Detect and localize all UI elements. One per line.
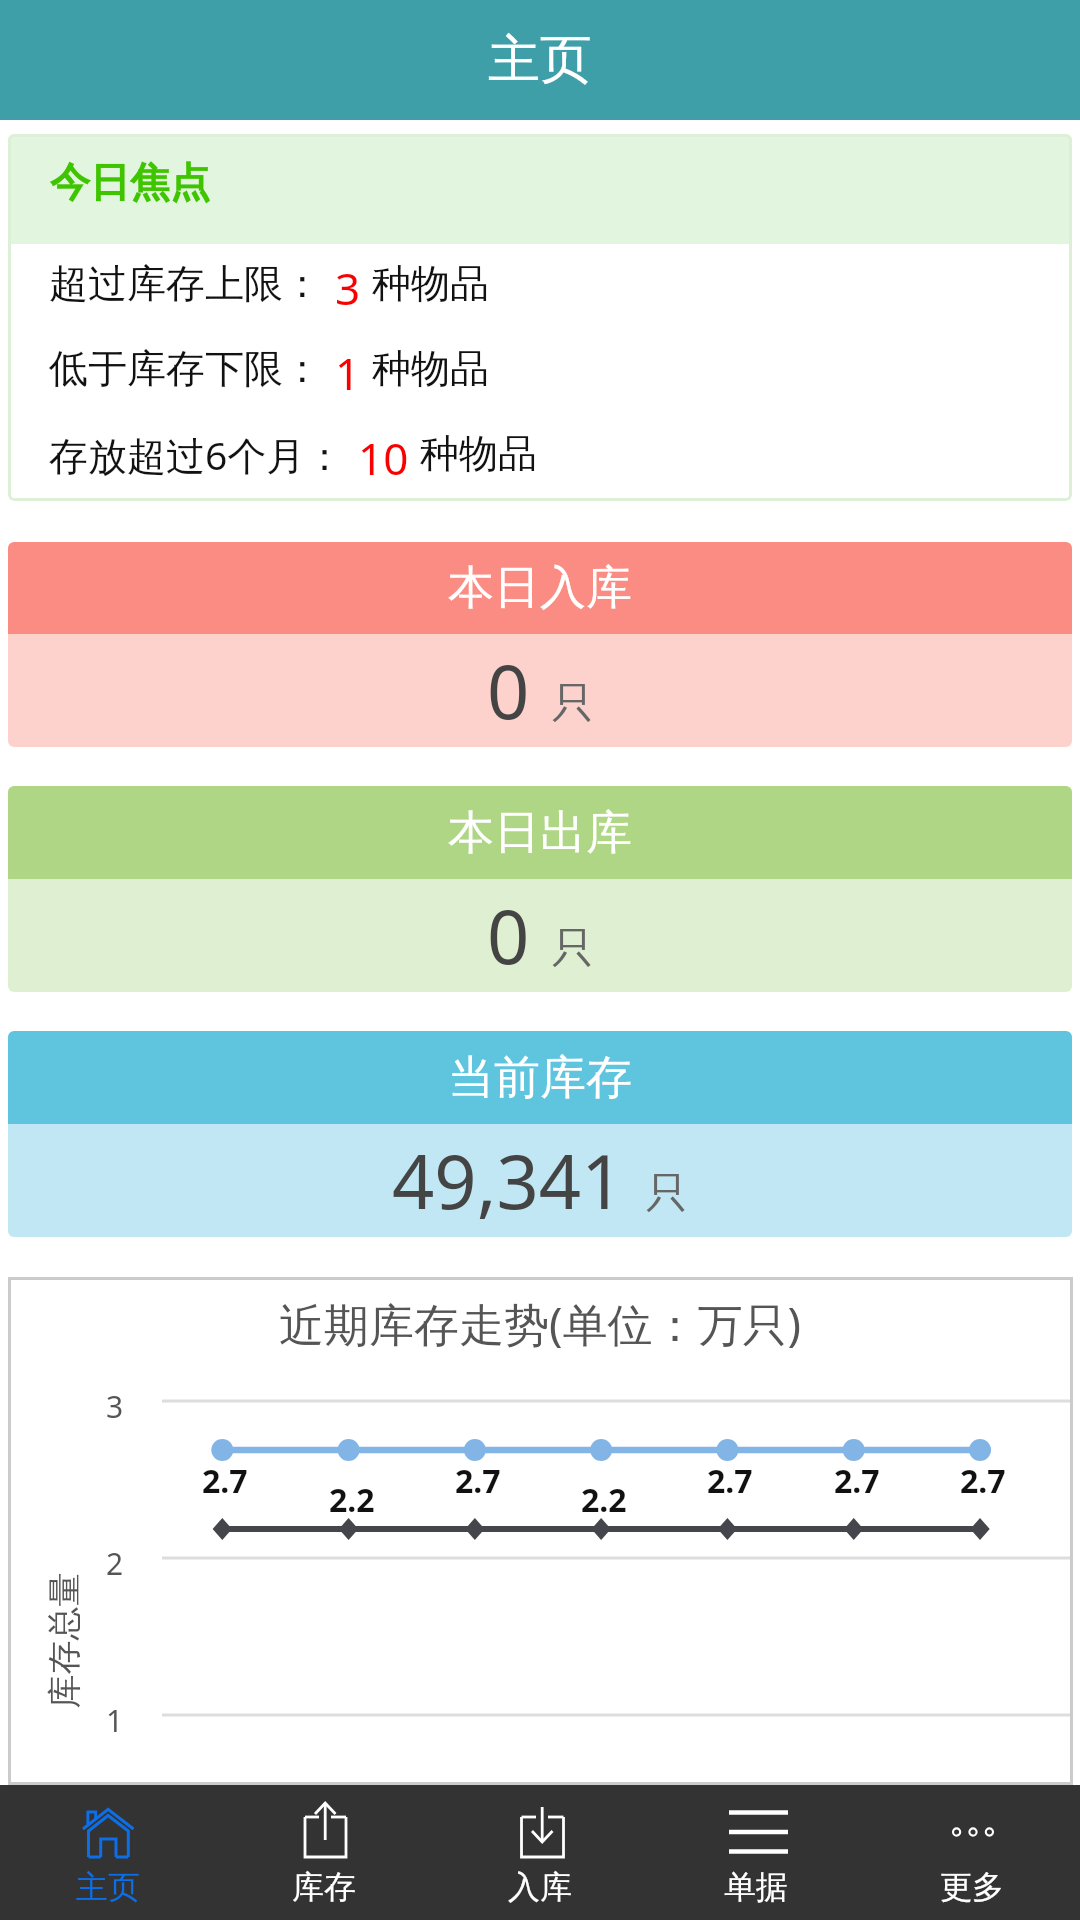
staticText: 2.2 (581, 1478, 627, 1522)
staticText: 2.2 (329, 1478, 375, 1522)
staticText: 更多 (940, 1867, 1004, 1907)
staticText: 2 (106, 1543, 124, 1584)
staticText: 3 (106, 1386, 124, 1427)
staticText: 本日出库 (448, 804, 632, 862)
staticText: 种物品 (372, 344, 489, 393)
staticText: 当前库存 (448, 1049, 632, 1107)
staticText: 单据 (724, 1867, 788, 1907)
staticText: 0 (487, 885, 530, 986)
staticText: 2.7 (202, 1459, 248, 1503)
staticText: 种物品 (420, 429, 537, 478)
staticText: 库存 (292, 1867, 356, 1907)
other: 主页 (78, 1802, 138, 1862)
other: 入库 (510, 1802, 570, 1862)
button[interactable]: 单据 (648, 1785, 864, 1920)
button[interactable]: 本日入库 (8, 542, 1072, 747)
staticText: 今日焦点 (50, 157, 210, 207)
staticText: 49,341 (392, 1130, 624, 1231)
staticText: 1 (106, 1700, 124, 1741)
other: 单据 (726, 1802, 786, 1862)
other: 更多 (942, 1802, 1002, 1862)
button[interactable]: 当前库存 (8, 1031, 1072, 1237)
button[interactable]: 更多 (864, 1785, 1080, 1920)
button[interactable]: 入库 (432, 1785, 648, 1920)
button[interactable]: 库存 (216, 1785, 432, 1920)
staticText: 本日入库 (448, 559, 632, 617)
staticText: 近期库存走势(单位：万只) (279, 1293, 802, 1354)
staticText: 低于库存下限： (49, 344, 322, 393)
staticText: 超过库存上限： (49, 259, 322, 308)
button[interactable]: 主页 (0, 1785, 216, 1920)
staticText: 10 (358, 428, 409, 478)
staticText: 只 (552, 922, 594, 975)
staticText: 2.7 (455, 1459, 501, 1503)
staticText: 存放超过6个月： (49, 428, 345, 478)
staticText: 2.7 (960, 1459, 1006, 1503)
button[interactable]: 本日出库 (8, 786, 1072, 992)
other: 库存 (294, 1802, 354, 1862)
staticText: 种物品 (372, 259, 489, 308)
staticText: 1 (335, 343, 361, 393)
staticText: 只 (552, 677, 594, 730)
button[interactable]: 今日焦点 (8, 134, 1072, 501)
staticText: 主页 (488, 27, 592, 93)
staticText: 2.7 (707, 1459, 753, 1503)
staticText: 只 (646, 1167, 688, 1220)
staticText: 0 (487, 640, 530, 741)
staticText: 库存总量 (42, 1572, 85, 1708)
staticText: 入库 (508, 1867, 572, 1907)
staticText: 3 (335, 258, 361, 308)
staticText: 2.7 (834, 1459, 880, 1503)
staticText: 主页 (76, 1867, 140, 1907)
